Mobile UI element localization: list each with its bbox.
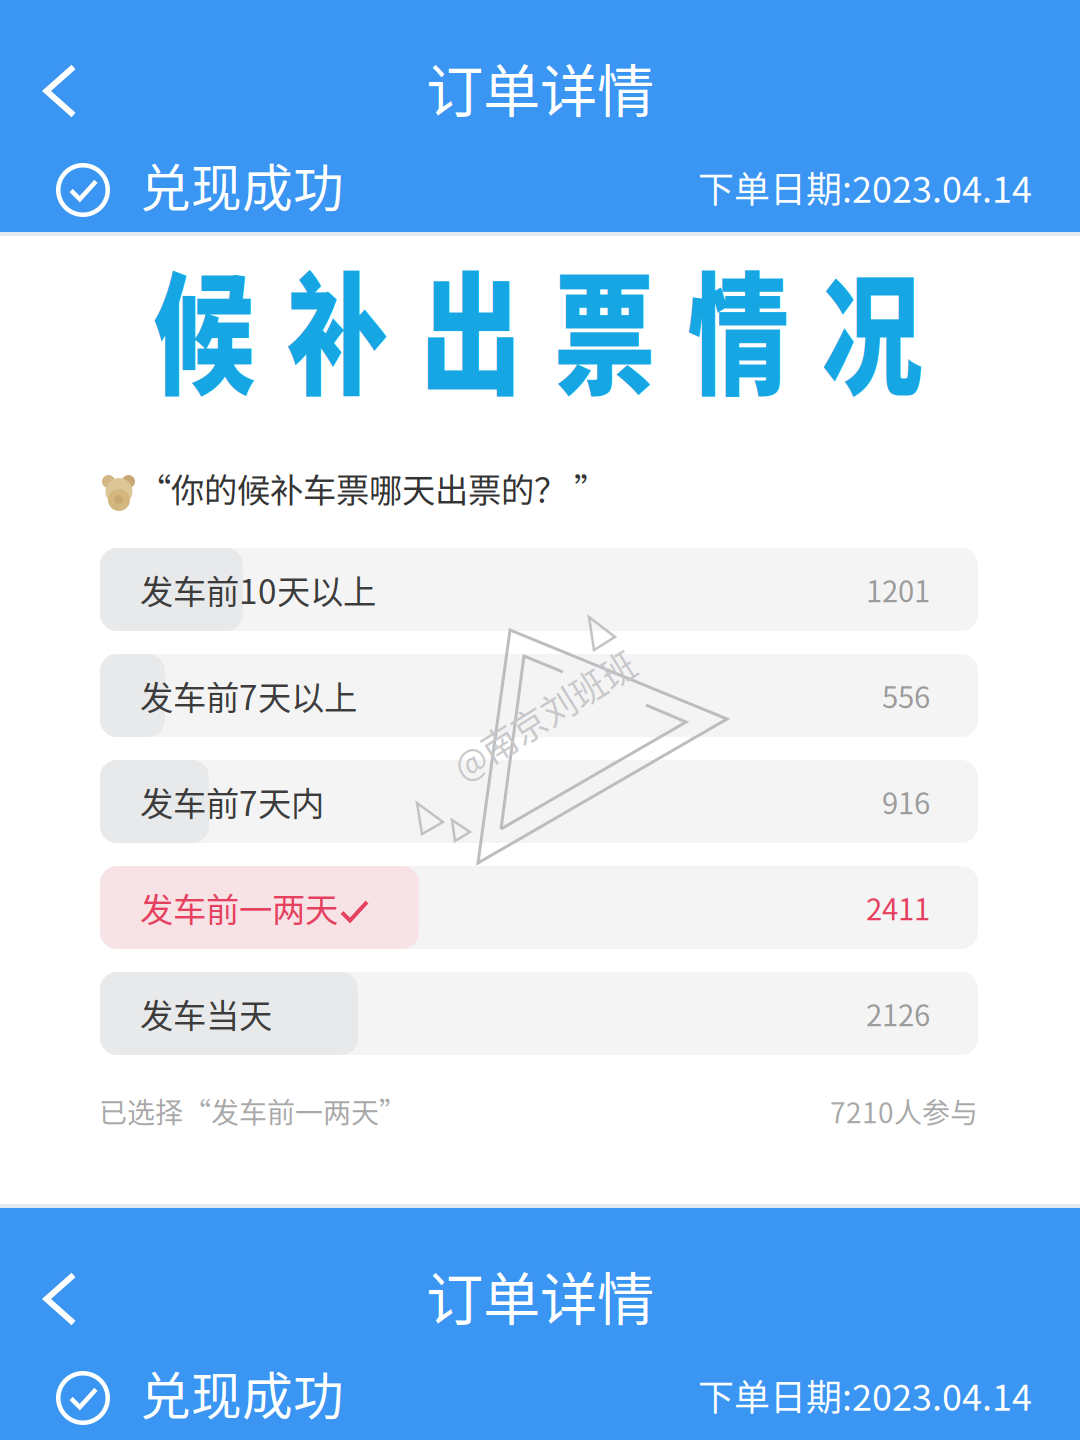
button[interactable]: 发车前7天内 [100,760,978,843]
button[interactable]: 发车前10天以上 [100,548,978,631]
staticText: @南京刘班班 [440,689,648,739]
staticText: 下单日期:2023.04.14 [698,1369,1032,1421]
staticText: 订单详情 [426,1253,654,1336]
staticText: 发车当天 [140,989,272,1038]
button[interactable]: 发车前7天以上 [100,654,978,737]
staticText: 发车前一两天 [140,883,338,932]
button[interactable]: Back [8,1247,112,1351]
staticText: 订单详情 [426,45,654,128]
button[interactable]: 发车当天 [100,972,978,1055]
staticText: 发车前7天以上 [140,671,357,720]
staticText: 556 [882,674,930,717]
button[interactable]: 发车前一两天 [100,866,978,949]
staticText: 2126 [866,992,930,1035]
staticText: 7210人参与 [830,1091,978,1131]
staticText: “你的候补车票哪天出票的？ ” [138,464,607,512]
staticText: 下单日期:2023.04.14 [698,161,1032,213]
staticText: 兑现成功 [140,1356,344,1430]
staticText: 候补出票情况 [153,253,922,399]
staticText: 1201 [866,568,930,611]
staticText: 兑现成功 [140,148,344,222]
staticText: 发车前10天以上 [140,565,376,614]
staticText: 已选择“发车前一两天” [99,1091,407,1131]
staticText: 2411 [866,886,930,929]
button[interactable]: Back [8,39,112,143]
staticText: 发车前7天内 [140,777,324,826]
staticText: 916 [882,780,930,823]
